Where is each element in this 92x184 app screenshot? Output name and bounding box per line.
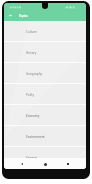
button[interactable]: Polity	[4, 84, 86, 105]
staticText: Science	[26, 156, 37, 160]
button[interactable]: Back	[17, 159, 27, 169]
button[interactable]: Environment	[4, 126, 86, 147]
staticText: Topics	[19, 14, 28, 18]
button[interactable]: Culture	[4, 21, 86, 42]
staticText: History	[26, 51, 37, 55]
button[interactable]: Geography	[4, 63, 86, 84]
staticText: Culture	[26, 30, 37, 34]
staticText: Geography	[26, 72, 43, 76]
button[interactable]: Economy	[4, 105, 86, 126]
staticText: Polity	[26, 93, 35, 97]
button[interactable]: Home	[40, 159, 50, 169]
staticText: Economy	[26, 114, 40, 118]
staticText: Environment	[26, 135, 45, 139]
button[interactable]: Science	[4, 147, 86, 168]
button[interactable]: Back	[6, 11, 15, 20]
button[interactable]: Recents	[63, 159, 73, 169]
button[interactable]: History	[4, 42, 86, 63]
